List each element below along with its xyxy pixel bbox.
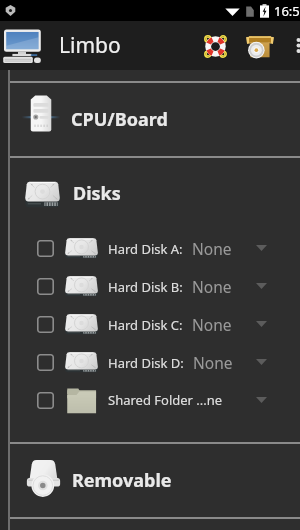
button[interactable]: More options — [278, 21, 300, 70]
button[interactable]: Disks — [10, 158, 300, 229]
staticText: CPU/Board — [71, 107, 168, 132]
button[interactable]: Hard Disk D: — [10, 343, 300, 381]
staticText: Shared Folder ...ne — [108, 391, 223, 409]
staticText: 16:5 — [274, 2, 300, 20]
button[interactable]: Removable — [10, 444, 300, 517]
staticText: Hard Disk B: — [108, 278, 183, 296]
button[interactable]: Load disc image — [240, 24, 278, 68]
button[interactable]: Shared Folder ...ne — [10, 381, 300, 419]
staticText: None — [192, 276, 232, 297]
button[interactable]: Help — [198, 24, 240, 68]
staticText: None — [193, 352, 233, 373]
staticText: None — [192, 238, 232, 259]
staticText: Hard Disk D: — [108, 354, 184, 372]
button[interactable]: Hard Disk A: — [10, 229, 300, 267]
staticText: Removable — [72, 468, 172, 493]
staticText: Disks — [73, 181, 121, 206]
staticText: Hard Disk A: — [108, 240, 183, 258]
staticText: None — [192, 314, 232, 335]
button[interactable]: CPU/Board — [10, 83, 300, 156]
button[interactable]: Hard Disk B: — [10, 267, 300, 305]
button[interactable]: Hard Disk C: — [10, 305, 300, 343]
staticText: Hard Disk C: — [108, 316, 183, 334]
staticText: Limbo — [59, 31, 121, 60]
